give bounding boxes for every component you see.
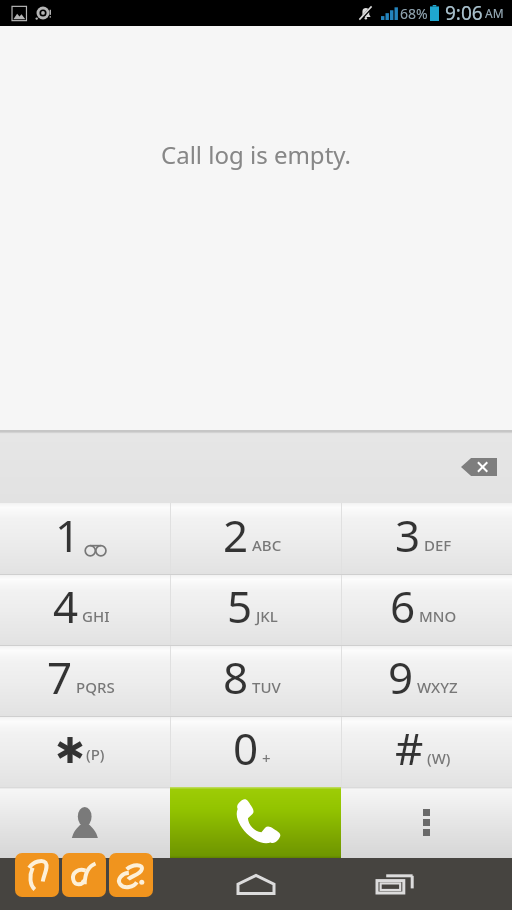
staticText: 6 <box>390 576 416 636</box>
staticText: (W) <box>427 748 451 768</box>
staticText: 9:06 <box>445 0 483 26</box>
staticText: AM <box>485 5 504 21</box>
button[interactable]: 7 <box>0 646 170 716</box>
staticText: TUV <box>252 677 281 697</box>
button[interactable]: Shortcut <box>109 853 153 897</box>
button[interactable]: 0 <box>171 717 341 787</box>
button[interactable]: 1 <box>0 503 170 574</box>
button[interactable]: Home <box>216 858 296 910</box>
staticText: 3 <box>395 505 421 565</box>
staticText: GHI <box>82 606 110 626</box>
button[interactable]: More options <box>341 787 512 858</box>
staticText: DEF <box>424 535 452 555</box>
button[interactable]: 2 <box>171 503 341 574</box>
button[interactable]: Shortcut <box>15 853 59 897</box>
staticText: 5 <box>227 576 253 636</box>
staticText: PQRS <box>76 677 115 697</box>
staticText: 2 <box>223 505 249 565</box>
button[interactable]: 8 <box>171 646 341 716</box>
staticText: 1 <box>55 505 81 565</box>
button[interactable]: 4 <box>0 575 170 645</box>
button[interactable]: 6 <box>342 575 512 645</box>
staticText: 68% <box>400 4 428 23</box>
staticText: MNO <box>419 606 457 626</box>
staticText: # <box>395 718 424 778</box>
button[interactable]: Call <box>170 787 341 858</box>
staticText: ABC <box>252 535 282 555</box>
staticText: 4 <box>53 576 79 636</box>
staticText: WXYZ <box>417 677 458 697</box>
staticText: JKL <box>256 606 278 626</box>
button[interactable]: Backspace <box>451 445 507 489</box>
staticText: Call log is empty. <box>161 138 352 171</box>
staticText: 9 <box>388 647 414 707</box>
staticText: 8 <box>223 647 249 707</box>
button[interactable]: Shortcut <box>62 853 106 897</box>
button[interactable]: # <box>342 717 512 787</box>
staticText: + <box>262 748 271 768</box>
button[interactable]: Recent apps <box>365 858 425 910</box>
button[interactable]: 5 <box>171 575 341 645</box>
staticText: 7 <box>47 647 73 707</box>
button[interactable]: 3 <box>342 503 512 574</box>
staticText: (P) <box>86 744 105 764</box>
button[interactable]: Contacts <box>0 787 170 858</box>
button[interactable]: 9 <box>342 646 512 716</box>
button[interactable]: (P) <box>0 717 170 787</box>
staticText: 0 <box>233 718 259 778</box>
